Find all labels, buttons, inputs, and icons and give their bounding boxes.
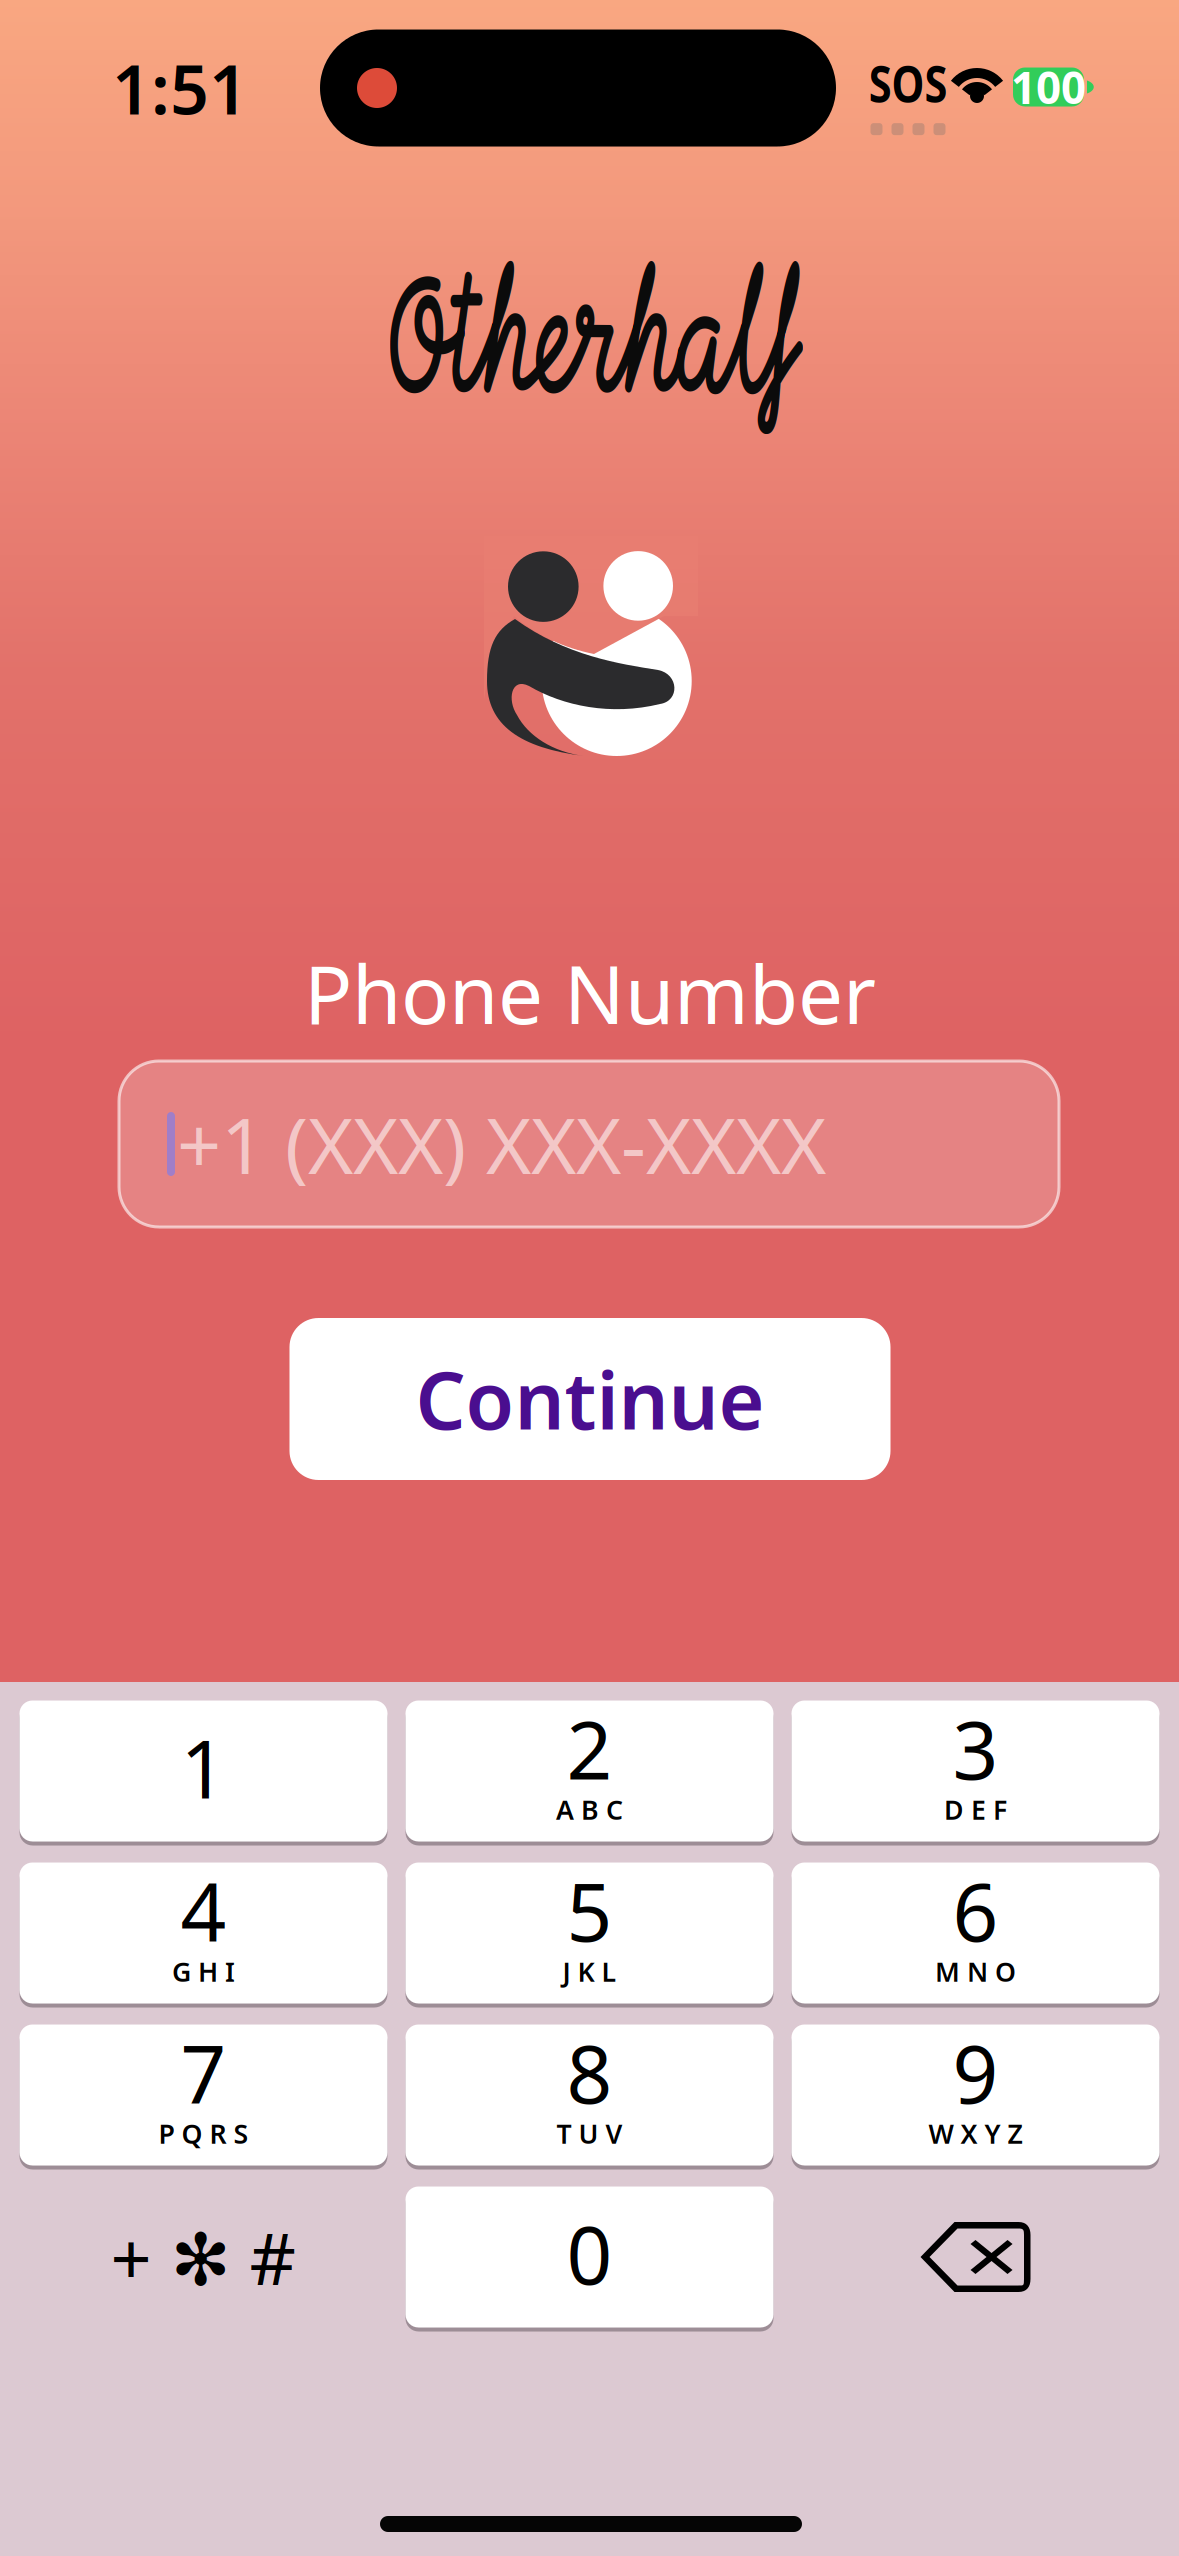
- button[interactable]: Delete: [791, 2186, 1159, 2327]
- staticText: T U V: [556, 2116, 622, 2151]
- staticText: 2: [566, 1695, 612, 1802]
- staticText: 100: [1011, 58, 1086, 116]
- staticText: W X Y Z: [928, 2116, 1022, 2151]
- staticText: 9: [952, 2019, 998, 2126]
- staticText: 1:51: [112, 43, 248, 133]
- staticText: D E F: [944, 1792, 1007, 1827]
- button[interactable]: 4: [19, 1862, 387, 2003]
- staticText: G H I: [172, 1954, 235, 1989]
- button[interactable]: Continue: [289, 1318, 890, 1480]
- staticText: M N O: [935, 1954, 1016, 1989]
- staticText: Otherhalf: [384, 281, 800, 389]
- button[interactable]: 0: [405, 2186, 773, 2327]
- staticText: Continue: [415, 1347, 764, 1451]
- staticText: 5: [566, 1857, 612, 1964]
- button[interactable]: 9: [791, 2024, 1159, 2165]
- staticText: 0: [566, 2200, 612, 2307]
- staticText: +1 (XXX) XXX-XXXX: [177, 1093, 826, 1195]
- staticText: 7: [180, 2019, 226, 2126]
- staticText: + ✻ #: [110, 2209, 296, 2305]
- staticText: 3: [952, 1695, 998, 1802]
- staticText: A B C: [556, 1792, 623, 1827]
- button[interactable]: 8: [405, 2024, 773, 2165]
- button[interactable]: Plus, star and pound: [19, 2186, 387, 2327]
- button[interactable]: 1: [19, 1700, 387, 1841]
- staticText: 1: [180, 1714, 226, 1821]
- staticText: 4: [180, 1857, 226, 1964]
- staticText: P Q R S: [158, 2116, 248, 2151]
- staticText: J K L: [562, 1954, 616, 1989]
- button[interactable]: 6: [791, 1862, 1159, 2003]
- button[interactable]: 2: [405, 1700, 773, 1841]
- button[interactable]: 5: [405, 1862, 773, 2003]
- staticText: 6: [952, 1857, 998, 1964]
- staticText: SOS: [860, 49, 956, 116]
- staticText: 8: [566, 2019, 612, 2126]
- button[interactable]: 7: [19, 2024, 387, 2165]
- staticText: Phone Number: [304, 940, 876, 1046]
- button[interactable]: 3: [791, 1700, 1159, 1841]
